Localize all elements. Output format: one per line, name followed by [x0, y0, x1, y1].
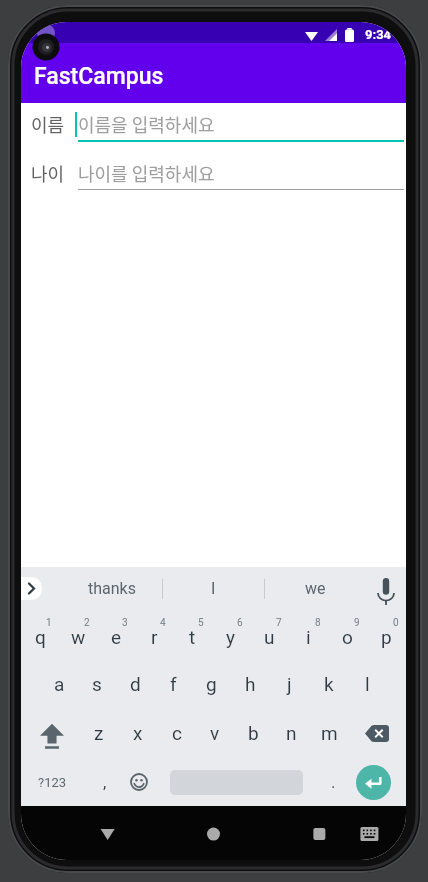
staticText: a: [54, 673, 65, 695]
staticText: c: [172, 722, 182, 744]
button[interactable]: t: [173, 610, 211, 659]
staticText: k: [324, 673, 334, 695]
button[interactable]: b: [234, 708, 272, 758]
staticText: m: [321, 722, 338, 744]
button[interactable]: [21, 708, 79, 758]
staticText: 4: [160, 617, 166, 629]
staticText: i: [306, 626, 311, 648]
button[interactable]: I: [163, 567, 264, 610]
staticText: 9:34: [365, 27, 392, 42]
staticText: e: [111, 626, 122, 648]
button[interactable]: c: [157, 708, 196, 758]
button[interactable]: [348, 708, 406, 758]
staticText: u: [264, 626, 275, 648]
button[interactable]: [21, 806, 150, 860]
button[interactable]: h: [231, 659, 270, 708]
button[interactable]: 나이: [31, 153, 406, 193]
staticText: 8: [315, 617, 321, 629]
button[interactable]: [278, 806, 406, 860]
button[interactable]: [125, 762, 153, 802]
staticText: y: [226, 626, 235, 648]
button[interactable]: we: [265, 567, 366, 610]
staticText: 나이: [31, 160, 65, 186]
staticText: o: [342, 626, 353, 648]
button[interactable]: l: [348, 659, 387, 708]
button[interactable]: q: [21, 610, 59, 659]
staticText: p: [381, 626, 392, 648]
staticText: 이름: [31, 111, 65, 137]
staticText: l: [365, 673, 370, 695]
button[interactable]: o: [328, 610, 367, 659]
button[interactable]: r: [135, 610, 173, 659]
staticText: n: [286, 722, 297, 744]
staticText: w: [71, 626, 86, 648]
button[interactable]: k: [309, 659, 348, 708]
button[interactable]: v: [196, 708, 234, 758]
button[interactable]: y: [211, 610, 250, 659]
button[interactable]: s: [78, 659, 116, 708]
button[interactable]: w: [59, 610, 97, 659]
staticText: z: [94, 722, 104, 744]
staticText: 2: [84, 617, 90, 629]
staticText: v: [210, 722, 220, 744]
staticText: q: [35, 626, 46, 648]
staticText: 나이를 입력하세요: [78, 160, 215, 186]
staticText: .: [331, 772, 336, 792]
button[interactable]: n: [272, 708, 310, 758]
staticText: thanks: [88, 579, 136, 598]
staticText: f: [170, 673, 177, 695]
button[interactable]: ?123: [30, 762, 74, 802]
button[interactable]: u: [250, 610, 289, 659]
button[interactable]: .: [321, 762, 345, 802]
button[interactable]: f: [154, 659, 192, 708]
button[interactable]: d: [116, 659, 154, 708]
button[interactable]: ,: [93, 762, 117, 802]
staticText: 7: [276, 617, 282, 629]
staticText: j: [287, 673, 292, 695]
button[interactable]: i: [289, 610, 328, 659]
button[interactable]: [366, 567, 406, 610]
staticText: 5: [198, 617, 204, 629]
button[interactable]: j: [270, 659, 309, 708]
staticText: x: [133, 722, 143, 744]
staticText: ,: [103, 772, 107, 792]
staticText: 0: [393, 617, 399, 629]
staticText: t: [189, 626, 196, 648]
staticText: 이름을 입력하세요: [78, 111, 215, 137]
button[interactable]: a: [40, 659, 78, 708]
staticText: I: [211, 579, 216, 598]
staticText: b: [248, 722, 259, 744]
staticText: 1: [46, 617, 52, 629]
staticText: g: [206, 673, 217, 695]
staticText: 3: [122, 617, 128, 629]
button[interactable]: [356, 765, 391, 800]
button[interactable]: g: [192, 659, 231, 708]
button[interactable]: m: [310, 708, 348, 758]
button[interactable]: z: [79, 708, 118, 758]
staticText: s: [92, 673, 102, 695]
button[interactable]: [21, 577, 42, 600]
staticText: h: [245, 673, 256, 695]
staticText: r: [151, 626, 158, 648]
staticText: FastCampus: [34, 63, 164, 90]
button[interactable]: 이름: [31, 104, 406, 144]
button[interactable]: [150, 806, 278, 860]
staticText: 6: [237, 617, 243, 629]
button[interactable]: e: [97, 610, 135, 659]
button[interactable]: x: [118, 708, 157, 758]
staticText: 9: [354, 617, 360, 629]
staticText: ?123: [38, 775, 67, 790]
button[interactable]: thanks: [62, 567, 162, 610]
staticText: d: [130, 673, 141, 695]
button[interactable]: p: [367, 610, 406, 659]
staticText: we: [305, 579, 326, 598]
